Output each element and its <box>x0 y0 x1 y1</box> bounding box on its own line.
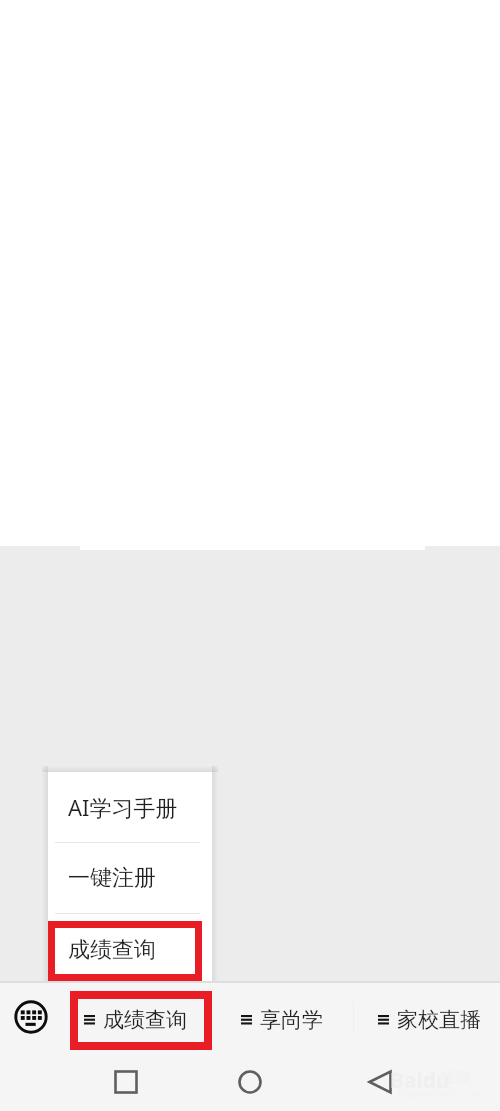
staticText: 家校直播 <box>397 1007 481 1033</box>
staticText: 享尚学 <box>260 1007 323 1033</box>
button[interactable]: Recents <box>95 1053 156 1111</box>
button[interactable]: AI学习手册 <box>48 772 212 842</box>
staticText: 一键注册 <box>68 864 156 892</box>
staticText: 成绩查询 <box>103 1007 187 1033</box>
button[interactable]: 享尚学 <box>207 981 353 1053</box>
button[interactable]: Back <box>349 1053 410 1111</box>
staticText: AI学习手册 <box>68 792 178 822</box>
button[interactable]: Home <box>219 1053 280 1111</box>
button[interactable]: 成绩查询 <box>61 981 206 1053</box>
button[interactable]: Keyboard <box>0 981 61 1053</box>
staticText: Baidu <box>390 1066 450 1095</box>
button[interactable]: 一键注册 <box>48 843 212 913</box>
button[interactable]: 成绩查询 <box>48 914 212 981</box>
button[interactable]: 家校直播 <box>354 981 500 1053</box>
staticText: 成绩查询 <box>68 936 156 964</box>
